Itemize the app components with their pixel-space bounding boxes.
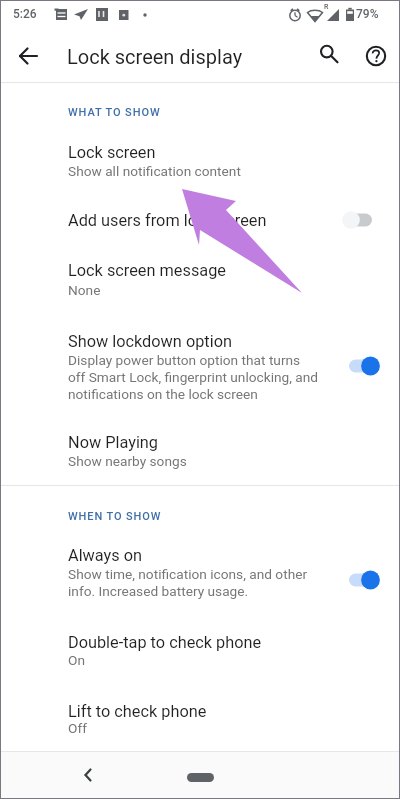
staticText: WHAT TO SHOW	[68, 106, 161, 119]
button[interactable]: Toggle off	[340, 204, 388, 236]
staticText: Lock screen message	[68, 261, 226, 280]
button[interactable]: Home	[187, 773, 214, 782]
button[interactable]: Back	[10, 38, 46, 74]
staticText: Double-tap to check phone	[68, 633, 262, 652]
staticText: 5:26	[13, 7, 37, 21]
staticText: 79%	[356, 7, 379, 21]
button[interactable]: Lock screen message	[0, 255, 400, 281]
staticText: Show nearby songs	[68, 453, 187, 469]
staticText: On	[68, 652, 85, 668]
button[interactable]: Double-tap to check phone	[0, 627, 400, 653]
staticText: Lock screen display	[67, 45, 243, 68]
button[interactable]: Always on	[0, 540, 400, 566]
button[interactable]: Search	[310, 38, 346, 74]
staticText: WHEN TO SHOW	[68, 510, 162, 523]
staticText: Lock screen	[68, 143, 156, 162]
staticText: Show time, notification icons, and other…	[68, 566, 308, 599]
staticText: R	[324, 3, 329, 11]
staticText: Show all notification content	[68, 163, 241, 179]
button[interactable]: Show lockdown option	[0, 326, 400, 352]
button[interactable]: Add users from lock screen	[0, 205, 400, 231]
staticText: Lift to check phone	[68, 702, 207, 721]
staticText: Add users from lock screen	[68, 211, 267, 230]
staticText: Off	[68, 720, 87, 736]
button[interactable]: Lift to check phone	[0, 696, 400, 722]
button[interactable]: Lock screen	[0, 137, 400, 163]
button[interactable]: Back	[72, 760, 102, 790]
button[interactable]: Toggle on	[340, 564, 388, 596]
button[interactable]: Now Playing	[0, 427, 400, 453]
staticText: Always on	[68, 546, 143, 565]
staticText: Display power button option that turns o…	[68, 352, 319, 402]
staticText: None	[68, 282, 101, 298]
button[interactable]: Toggle on	[340, 350, 388, 382]
button[interactable]: Help	[358, 38, 394, 74]
staticText: Show lockdown option	[68, 332, 232, 351]
staticText: Now Playing	[68, 433, 159, 452]
